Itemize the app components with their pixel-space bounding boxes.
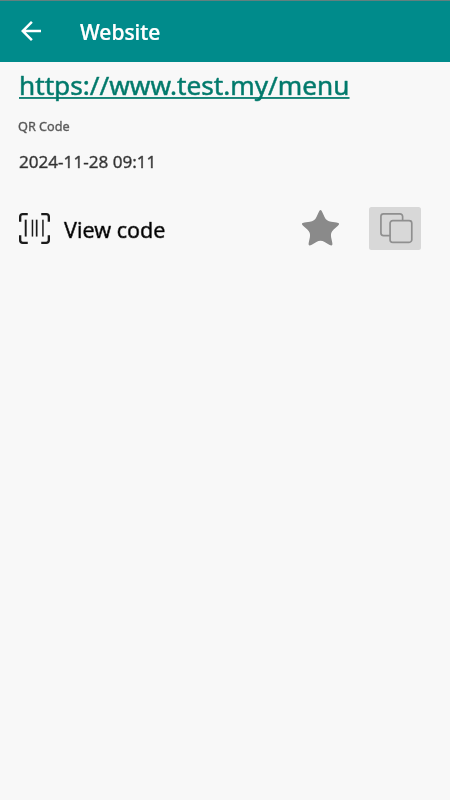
staticText: https://www.test.my/menu	[19, 67, 350, 103]
button[interactable]: View code	[0, 201, 174, 257]
staticText: QR Code	[18, 117, 70, 134]
button[interactable]: Copy	[369, 207, 421, 250]
staticText: Website	[80, 18, 161, 47]
staticText: View code	[64, 215, 166, 244]
button[interactable]: https://www.test.my/menu	[19, 67, 350, 103]
button[interactable]: Back	[10, 10, 52, 52]
staticText: 2024-11-28 09:11	[19, 150, 157, 173]
button[interactable]: Favourite	[296, 203, 344, 251]
staticText: QR Code	[18, 117, 70, 134]
staticText: https://www.test.my/menu	[19, 67, 350, 103]
staticText: 2024-11-28 09:11	[19, 150, 157, 173]
staticText: View code	[64, 215, 166, 244]
